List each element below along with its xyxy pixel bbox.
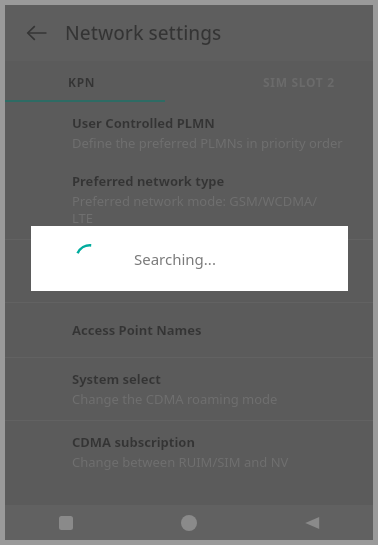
- button[interactable]: Back: [17, 13, 57, 53]
- staticText: Change the CDMA roaming mode: [72, 390, 278, 408]
- staticText: Preferred network type: [72, 172, 225, 190]
- staticText: User Controlled PLMN: [72, 114, 215, 132]
- button[interactable]: Back: [250, 505, 373, 540]
- button[interactable]: System select: [5, 358, 373, 420]
- button[interactable]: Home: [127, 505, 250, 540]
- button[interactable]: Searching...: [31, 226, 348, 291]
- staticText: CDMA subscription: [72, 433, 195, 451]
- button[interactable]: User Controlled PLMN: [5, 102, 373, 162]
- staticText: Preferred network mode: GSM/WCDMA/ LTE: [72, 192, 318, 227]
- staticText: Change between RUIM/SIM and NV: [72, 453, 289, 471]
- button[interactable]: Recent apps: [5, 505, 127, 540]
- staticText: Access Point Names: [72, 321, 202, 339]
- button[interactable]: Network: [5, 240, 373, 302]
- staticText: Define the preferred PLMNs in priority o…: [72, 134, 343, 152]
- staticText: Searching...: [134, 249, 216, 269]
- staticText: Network: [72, 252, 130, 270]
- button[interactable]: KPN: [5, 61, 189, 102]
- button[interactable]: Access Point Names: [5, 303, 373, 357]
- button[interactable]: Preferred network type: [5, 162, 373, 239]
- staticText: Network settings: [65, 20, 222, 46]
- staticText: System select: [72, 370, 161, 388]
- button[interactable]: CDMA subscription: [5, 421, 373, 483]
- staticText: SIM SLOT 2: [263, 74, 335, 90]
- staticText: KPN: [68, 74, 96, 90]
